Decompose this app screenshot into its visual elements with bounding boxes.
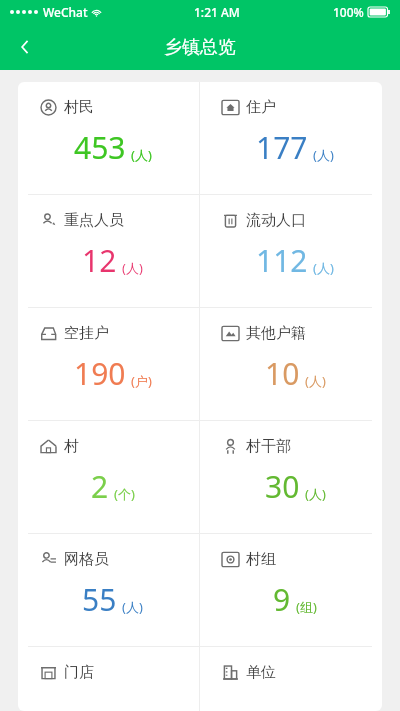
staticText: 2 [91,466,109,507]
staticText: 村民 [64,98,94,117]
staticText: 10 [265,353,300,394]
staticText: 村组 [246,550,276,569]
staticText: 12 [82,240,117,281]
staticText: (人) [122,598,143,616]
staticText: 其他户籍 [246,324,306,343]
button[interactable]: 网格员 [18,534,199,646]
staticText: 村干部 [246,437,291,456]
button[interactable]: 住户 [200,82,382,194]
staticText: (人) [305,372,326,390]
staticText: (人) [313,146,334,164]
button[interactable]: Back [8,30,42,64]
staticText: 门店 [64,663,94,682]
button[interactable]: 空挂户 [18,308,199,420]
staticText: 100% [333,4,364,20]
staticText: (人) [305,485,326,503]
staticText: (户) [131,372,152,390]
staticText: 1:21 AM [194,4,240,20]
staticText: (人) [122,259,143,277]
staticText: 重点人员 [64,211,124,230]
staticText: 空挂户 [64,324,109,343]
button[interactable]: 村干部 [200,421,382,533]
button[interactable]: 流动人口 [200,195,382,307]
staticText: 单位 [246,663,276,682]
staticText: (组) [296,598,317,616]
staticText: (个) [114,485,135,503]
button[interactable]: 其他户籍 [200,308,382,420]
button[interactable]: 门店 [18,647,199,711]
staticText: 村 [64,437,79,456]
button[interactable]: 村组 [200,534,382,646]
staticText: (人) [313,259,334,277]
staticText: (人) [131,146,152,164]
staticText: 453 [74,127,126,168]
staticText: 乡镇总览 [164,36,236,59]
staticText: 190 [74,353,126,394]
button[interactable]: 村 [18,421,199,533]
staticText: 177 [256,127,308,168]
staticText: WeChat [43,4,88,20]
staticText: 网格员 [64,550,109,569]
staticText: 30 [265,466,300,507]
staticText: 55 [82,579,117,620]
staticText: 9 [273,579,291,620]
staticText: 112 [256,240,308,281]
button[interactable]: 单位 [200,647,382,711]
button[interactable]: 村民 [18,82,199,194]
staticText: 流动人口 [246,211,306,230]
button[interactable]: 重点人员 [18,195,199,307]
staticText: 住户 [246,98,276,117]
